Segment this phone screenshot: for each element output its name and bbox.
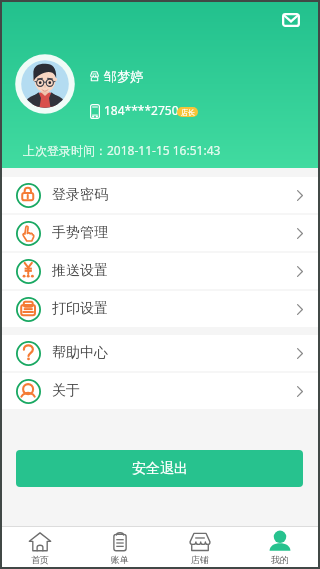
staticText: 安全退出: [132, 460, 188, 478]
button[interactable]: Messages: [275, 4, 305, 34]
staticText: 店铺: [191, 554, 209, 565]
button[interactable]: 安全退出: [16, 450, 303, 487]
button[interactable]: 首页: [0, 527, 80, 569]
staticText: 上次登录时间：2018-11-15 16:51:43: [23, 142, 221, 158]
button[interactable]: 我的: [240, 527, 320, 569]
staticText: 登录密码: [52, 186, 108, 204]
staticText: 账单: [111, 554, 129, 565]
staticText: 手势管理: [52, 224, 108, 242]
button[interactable]: 帮助中心: [0, 335, 320, 371]
staticText: 邹梦婷: [104, 68, 143, 84]
staticText: 关于: [52, 382, 80, 400]
button[interactable]: 打印设置: [0, 291, 320, 327]
button[interactable]: 店铺: [160, 527, 240, 569]
button[interactable]: 手势管理: [0, 215, 320, 251]
staticText: 店长: [181, 108, 195, 117]
staticText: 帮助中心: [52, 344, 108, 362]
staticText: 184****2750: [104, 102, 179, 118]
staticText: 打印设置: [52, 300, 108, 318]
staticText: 首页: [31, 554, 49, 565]
button[interactable]: 登录密码: [0, 177, 320, 213]
button[interactable]: 推送设置: [0, 253, 320, 289]
staticText: 我的: [271, 554, 289, 565]
staticText: 推送设置: [52, 262, 108, 280]
button[interactable]: 关于: [0, 373, 320, 409]
button[interactable]: 账单: [80, 527, 160, 569]
